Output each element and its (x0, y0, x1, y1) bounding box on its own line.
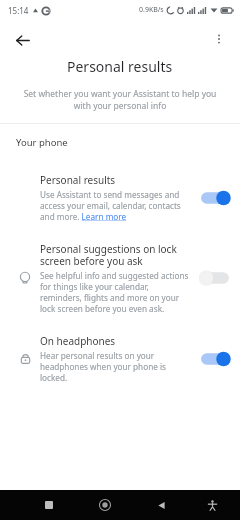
staticText: Personal suggestions on lock screen befo… (40, 242, 192, 268)
staticText: Use Assistant to send messages and acces… (40, 189, 192, 222)
button[interactable]: Back (148, 492, 174, 518)
button[interactable]: Recents (36, 492, 62, 518)
button[interactable]: Personal suggestions on lock screen befo… (0, 240, 240, 316)
button[interactable]: Back (6, 24, 38, 56)
button[interactable]: Off (198, 267, 232, 289)
staticText: Set whether you want your Assistant to h… (14, 88, 226, 112)
staticText: Personal results (67, 57, 173, 76)
button[interactable]: Personal results (0, 171, 240, 224)
staticText: Your phone (16, 136, 68, 149)
staticText: 15:14 (8, 5, 29, 16)
button[interactable]: On (198, 348, 232, 370)
staticText: On headphones (40, 334, 116, 348)
staticText: Personal results (40, 173, 116, 187)
staticText: See helpful info and suggested actions f… (40, 270, 192, 314)
button[interactable]: On headphones (0, 332, 240, 385)
button[interactable]: On (198, 187, 232, 209)
button[interactable]: More options (204, 24, 234, 54)
staticText: 0.9KB/s (139, 5, 164, 15)
button[interactable]: Home (92, 492, 118, 518)
staticText: Hear personal results on your headphones… (40, 350, 192, 383)
button[interactable]: Accessibility (199, 492, 225, 518)
